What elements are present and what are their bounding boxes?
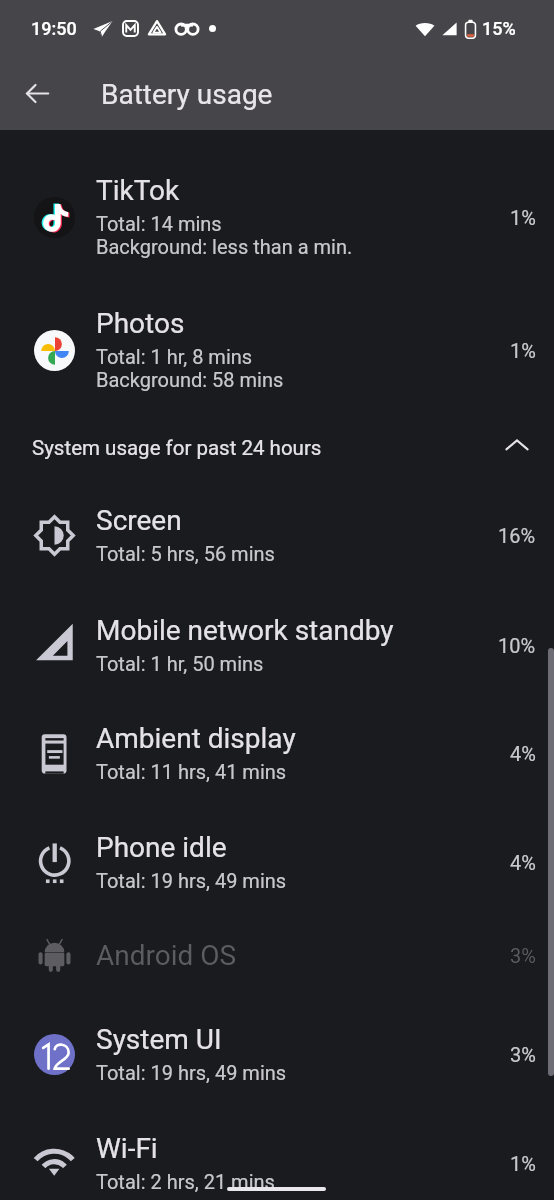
button[interactable]: Ambient display [0,709,554,797]
staticText: Android OS [96,939,237,972]
button[interactable]: TikTok [0,173,554,261]
button[interactable]: Wi-Fi [0,1119,554,1200]
button[interactable]: Mobile network standby [0,601,554,689]
staticText: Total: 5 hrs, 56 mins [96,542,275,565]
staticText: 1% [510,339,536,362]
staticText: Total: 11 hrs, 41 mins [96,760,287,783]
staticText: Total: 1 hr, 8 mins [96,345,253,368]
staticText: System usage for past 24 hours [32,436,322,460]
staticText: 16% [498,524,536,547]
staticText: TikTok [96,174,180,207]
staticText: Background: less than a min. [96,235,353,258]
staticText: 3% [510,1043,536,1066]
staticText: Phone idle [96,831,227,864]
staticText: Total: 19 hrs, 49 mins [96,1061,287,1084]
staticText: Total: 19 hrs, 49 mins [96,869,287,892]
button[interactable]: Back [13,69,61,117]
button[interactable]: System usage for past 24 hours [0,415,554,477]
staticText: 19:50 [31,18,77,39]
staticText: Total: 2 hrs, 21 mins [96,1170,275,1193]
button[interactable]: Android OS [0,911,554,999]
staticText: 3% [510,944,536,967]
button[interactable]: Screen [0,491,554,579]
staticText: Mobile network standby [96,614,394,647]
staticText: 1% [510,206,536,229]
staticText: Total: 1 hr, 50 mins [96,652,264,675]
staticText: 1% [510,1152,536,1175]
staticText: Total: 14 mins [96,212,222,235]
staticText: Wi-Fi [96,1132,158,1165]
staticText: 10% [498,634,536,657]
button[interactable]: Phone idle [0,818,554,906]
staticText: 4% [510,851,536,874]
other: Collapse [503,432,531,460]
staticText: Ambient display [96,722,296,755]
staticText: 4% [510,742,536,765]
staticText: Photos [96,307,185,340]
button[interactable]: Photos [0,306,554,394]
staticText: Battery usage [101,78,273,111]
staticText: Background: 58 mins [96,368,284,391]
button[interactable]: System UI [0,1010,554,1098]
staticText: Screen [96,504,182,537]
staticText: System UI [96,1023,222,1056]
staticText: 15% [482,18,516,39]
